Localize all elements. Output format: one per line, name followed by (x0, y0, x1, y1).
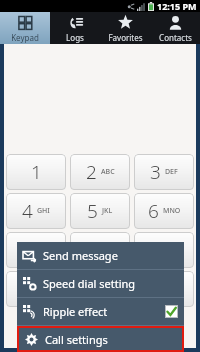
staticText: Keypad (11, 32, 39, 43)
button[interactable]: 8 (70, 232, 130, 268)
button[interactable]: Call settings (19, 328, 182, 350)
button[interactable]: # (134, 271, 194, 307)
button[interactable]: 3 (134, 154, 194, 190)
staticText: Call settings (45, 332, 176, 347)
staticText: 2 (86, 159, 97, 185)
staticText: # (158, 276, 171, 302)
staticText: Contacts (159, 32, 192, 43)
staticText: 7 (19, 237, 30, 263)
staticText: DEF (165, 167, 178, 177)
staticText: Logs (66, 32, 84, 43)
button[interactable]: Favorites (100, 12, 150, 44)
button[interactable]: 1 (6, 154, 66, 190)
button[interactable]: Speed dial setting (17, 270, 184, 297)
staticText: 1 (31, 159, 42, 185)
other: Contacts (168, 15, 183, 30)
staticText: 5 (87, 198, 98, 224)
button[interactable]: ∗ (6, 271, 66, 307)
staticText: 4 (22, 198, 33, 224)
staticText: JKL (102, 206, 113, 216)
staticText: + (105, 284, 110, 294)
staticText: 8 (86, 237, 97, 263)
staticText: 3 (150, 159, 161, 185)
button[interactable]: Contacts (150, 12, 200, 44)
button[interactable]: 4 (6, 193, 66, 229)
staticText: ABC (101, 167, 115, 177)
other: Logs (68, 15, 83, 30)
staticText: MNO (163, 206, 181, 216)
staticText: PQRS (34, 245, 53, 255)
other: Favorites (118, 15, 133, 30)
staticText: TUV (101, 245, 115, 255)
staticText: Favorites (108, 32, 143, 43)
other: Keypad (18, 15, 33, 30)
staticText: GHI (37, 206, 50, 216)
button[interactable]: 9 (134, 232, 194, 268)
button[interactable]: Keypad (0, 12, 50, 44)
staticText: 6 (148, 198, 159, 224)
button[interactable]: 6 (134, 193, 194, 229)
staticText: ∗ (30, 278, 42, 300)
staticText: Ripple effect (43, 304, 165, 319)
staticText: Send message (43, 248, 178, 263)
staticText: Speed dial setting (43, 276, 178, 291)
button[interactable]: 0 (70, 271, 130, 307)
button[interactable]: Send message (17, 242, 184, 269)
button[interactable]: Ripple effect (17, 298, 184, 325)
staticText: 0 (90, 276, 101, 302)
button[interactable]: Logs (50, 12, 100, 44)
button[interactable]: 7 (6, 232, 66, 268)
button[interactable]: 5 (70, 193, 130, 229)
staticText: 9 (147, 237, 158, 263)
button[interactable]: 2 (70, 154, 130, 190)
staticText: 12:15 PM (157, 0, 197, 12)
